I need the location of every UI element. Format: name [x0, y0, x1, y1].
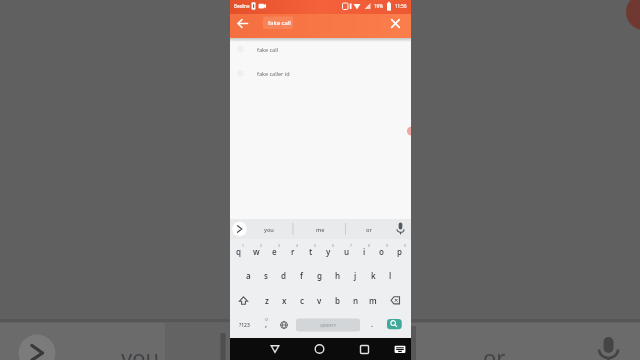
button[interactable] [230, 62, 411, 86]
staticText: o [379, 246, 384, 257]
staticText: n [353, 295, 359, 306]
staticText: p [397, 246, 403, 257]
staticText: 6 [332, 243, 335, 248]
staticText: s [264, 270, 268, 281]
staticText: z [265, 295, 269, 306]
staticText: r [291, 246, 295, 257]
staticText: or [483, 342, 506, 360]
staticText: f [300, 270, 303, 281]
button[interactable] [275, 266, 292, 287]
staticText: g [317, 270, 323, 281]
staticText: k [371, 270, 376, 281]
button[interactable] [311, 266, 328, 287]
button[interactable] [284, 241, 301, 262]
button[interactable] [266, 340, 284, 358]
button[interactable] [383, 266, 400, 287]
button[interactable] [234, 316, 253, 334]
button[interactable] [294, 291, 311, 311]
staticText: e [272, 246, 277, 257]
button[interactable] [356, 241, 373, 262]
button[interactable] [347, 266, 364, 287]
staticText: ?123 [239, 322, 250, 329]
staticText: 19% [374, 3, 383, 9]
staticText: fake call [257, 46, 279, 53]
button[interactable] [248, 220, 292, 238]
button[interactable] [392, 341, 408, 357]
button[interactable] [258, 291, 275, 311]
staticText: a [246, 270, 251, 281]
staticText: 1 [242, 243, 245, 248]
button[interactable] [338, 241, 355, 262]
staticText: Beeline [234, 3, 250, 9]
staticText: j [354, 270, 357, 281]
button[interactable] [302, 241, 319, 262]
staticText: 4 [296, 243, 299, 248]
button[interactable] [258, 266, 275, 287]
button[interactable] [364, 316, 381, 334]
button[interactable] [385, 291, 405, 311]
button[interactable] [329, 291, 346, 311]
staticText: or [366, 226, 372, 234]
staticText: v [317, 295, 322, 306]
staticText: 3 [278, 243, 281, 248]
button[interactable] [365, 266, 382, 287]
button[interactable] [260, 15, 380, 37]
staticText: y [326, 246, 331, 257]
button[interactable] [329, 266, 346, 287]
button[interactable] [230, 241, 247, 262]
staticText: h [335, 270, 341, 281]
staticText: c [300, 295, 305, 306]
staticText: m [369, 295, 377, 306]
staticText: 11:56 [395, 3, 407, 9]
button[interactable] [234, 291, 253, 311]
staticText: d [281, 270, 287, 281]
button[interactable] [386, 316, 403, 332]
button[interactable] [258, 316, 275, 334]
staticText: QWERTY [320, 323, 337, 328]
staticText: me [316, 226, 325, 234]
button[interactable] [276, 316, 292, 334]
button[interactable] [364, 291, 381, 311]
button[interactable] [240, 266, 257, 287]
button[interactable] [355, 340, 374, 358]
button[interactable] [236, 17, 254, 35]
staticText: 9 [386, 243, 389, 248]
staticText: 2 [260, 243, 263, 248]
button[interactable] [320, 241, 337, 262]
staticText: x [282, 295, 287, 306]
button[interactable] [293, 266, 310, 287]
button[interactable] [374, 241, 391, 262]
button[interactable] [296, 316, 360, 334]
staticText: . [371, 318, 374, 329]
staticText: 7 [350, 243, 353, 248]
staticText: 5 [314, 243, 317, 248]
staticText: fake call [268, 19, 291, 27]
staticText: 8 [368, 243, 371, 248]
button[interactable] [393, 220, 408, 238]
staticText: w [253, 246, 260, 257]
staticText: 0 [404, 243, 407, 248]
staticText: u [344, 246, 350, 257]
button[interactable] [347, 291, 364, 311]
button[interactable] [232, 221, 247, 237]
button[interactable] [311, 291, 328, 311]
staticText: , [265, 318, 268, 329]
staticText: you [121, 342, 160, 360]
button[interactable] [266, 241, 283, 262]
button[interactable] [230, 38, 411, 62]
staticText: l [389, 270, 392, 281]
button[interactable] [347, 220, 391, 238]
staticText: i [363, 246, 366, 257]
button[interactable] [276, 291, 293, 311]
button[interactable] [391, 241, 408, 262]
staticText: q [236, 246, 242, 257]
staticText: you [264, 226, 274, 234]
staticText: b [335, 295, 341, 306]
staticText: t [309, 246, 313, 257]
button[interactable] [388, 17, 406, 35]
button[interactable] [248, 241, 265, 262]
staticText: fake caller id [257, 70, 290, 77]
button[interactable] [296, 220, 344, 238]
button[interactable] [310, 340, 329, 358]
